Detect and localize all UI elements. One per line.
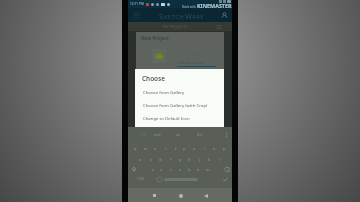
staticText: the — [197, 132, 203, 137]
staticText: W — [185, 11, 192, 21]
staticText: x — [160, 167, 163, 172]
button[interactable]: Shift — [130, 165, 138, 173]
button[interactable]: z — [149, 164, 156, 174]
staticText: g — [179, 157, 182, 162]
staticText: 12:11 PM — [130, 2, 144, 6]
button[interactable]: Account — [219, 10, 229, 20]
staticText: MY PROJECTS — [163, 24, 188, 29]
button[interactable]: d — [157, 154, 164, 164]
staticText: and — [154, 132, 161, 137]
button[interactable]: Sort — [215, 23, 223, 31]
button[interactable]: u — [191, 143, 198, 153]
staticText: s — [150, 157, 152, 162]
button[interactable]: f — [167, 154, 174, 164]
staticText: Choose from Gallery — [143, 89, 185, 95]
button[interactable]: MY PROJECTS — [160, 23, 191, 30]
button[interactable]: w — [142, 143, 149, 153]
button[interactable]: b — [186, 164, 193, 174]
staticText: sukhada current — [177, 60, 204, 65]
button[interactable]: j — [196, 154, 203, 164]
button[interactable]: g — [177, 154, 184, 164]
staticText: h — [188, 157, 191, 162]
staticText: Choose from Gallery (with Crop) — [143, 102, 208, 108]
staticText: j — [199, 157, 201, 162]
button[interactable]: q — [132, 143, 139, 153]
button[interactable]: Back — [201, 191, 210, 200]
staticText: r — [165, 146, 167, 151]
other: Enter — [223, 177, 228, 182]
button[interactable]: s — [147, 154, 154, 164]
staticText: y — [183, 146, 186, 151]
button[interactable]: n — [195, 164, 202, 174]
button[interactable]: t — [172, 143, 179, 153]
staticText: a — [139, 157, 142, 162]
staticText: z — [152, 167, 154, 172]
staticText: e — [154, 146, 157, 151]
staticText: t — [175, 146, 177, 151]
staticText: o — [213, 146, 216, 151]
button[interactable]: m — [204, 164, 211, 174]
staticText: c — [170, 167, 172, 172]
staticText: Change to Default Icon — [143, 115, 190, 121]
staticText: ARE — [192, 13, 204, 21]
button[interactable]: Home — [176, 191, 185, 200]
staticText: b — [188, 167, 191, 172]
button[interactable]: Backspace — [222, 165, 230, 173]
staticText: w — [144, 146, 148, 151]
button[interactable]: v — [177, 164, 184, 174]
staticText: KINEMASTER — [197, 2, 232, 9]
button[interactable]: New Project — [136, 32, 224, 69]
staticText: S — [159, 11, 164, 21]
staticText: k — [208, 157, 211, 162]
button[interactable]: l — [216, 154, 223, 164]
staticText: KETCH — [164, 13, 185, 21]
staticText: q — [134, 146, 137, 151]
staticText: Choose — [142, 74, 165, 83]
button[interactable]: Open navigation menu — [131, 10, 141, 20]
button[interactable]: Change to Default Icon — [135, 111, 224, 124]
staticText: Made with — [182, 5, 197, 9]
button[interactable]: Recent apps — [150, 191, 159, 200]
staticText: n — [197, 167, 200, 172]
button[interactable]: k — [206, 154, 213, 164]
staticText: d — [159, 157, 162, 162]
staticText: l — [219, 157, 221, 162]
staticText: ap — [176, 132, 181, 137]
button[interactable]: r — [162, 143, 169, 153]
button[interactable] — [152, 49, 166, 63]
button[interactable]: o — [211, 143, 218, 153]
button[interactable]: a — [137, 154, 144, 164]
staticText: New Project — [141, 35, 169, 41]
button[interactable]: y — [181, 143, 188, 153]
button[interactable]: h — [186, 154, 193, 164]
button[interactable]: Choose from Gallery — [135, 85, 224, 98]
button[interactable]: c — [167, 164, 174, 174]
button[interactable]: x — [158, 164, 165, 174]
staticText: . — [218, 176, 219, 181]
staticText: , — [150, 176, 151, 181]
button[interactable]: i — [201, 143, 208, 153]
staticText: i — [204, 146, 206, 151]
staticText: v — [179, 167, 182, 172]
button[interactable]: p — [221, 143, 228, 153]
button[interactable]: Choose from Gallery (with Crop) — [135, 98, 224, 111]
staticText: ?123 — [137, 177, 144, 181]
staticText: u — [193, 146, 196, 151]
button[interactable]: e — [152, 143, 159, 153]
staticText: p — [223, 146, 226, 151]
staticText: m — [206, 167, 210, 172]
staticText: f — [170, 157, 172, 162]
